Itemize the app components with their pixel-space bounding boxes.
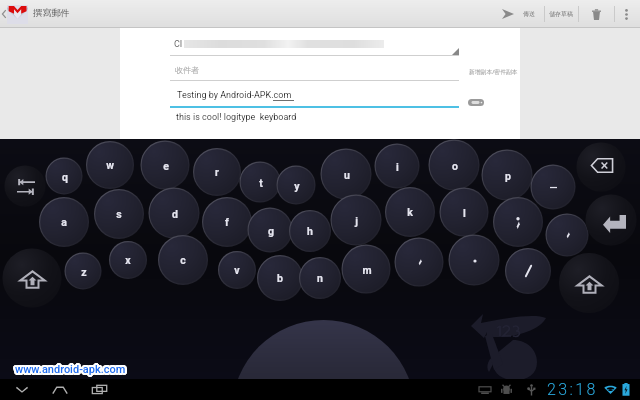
button[interactable]: p xyxy=(482,150,533,201)
staticText: 撰寫郵件 xyxy=(33,7,70,19)
button[interactable]: Recent apps xyxy=(88,382,112,397)
button[interactable]: x xyxy=(109,241,147,279)
staticText: h xyxy=(307,225,313,237)
staticText: l xyxy=(463,207,466,219)
button[interactable]: j xyxy=(331,195,382,246)
staticText: 儲存草稿 xyxy=(549,10,573,18)
button[interactable] xyxy=(505,248,551,294)
button[interactable]: Tab xyxy=(5,166,46,207)
staticText: w xyxy=(106,159,114,171)
staticText: CI xyxy=(174,39,183,50)
staticText: e xyxy=(163,160,169,172)
staticText: u xyxy=(344,169,350,181)
button[interactable] xyxy=(546,214,589,257)
button[interactable]: 新增副本/密件副本 xyxy=(466,64,515,80)
button[interactable]: u xyxy=(321,149,372,200)
button[interactable]: c xyxy=(158,235,208,285)
button[interactable]: y xyxy=(277,166,316,205)
button[interactable]: 撰寫郵件 xyxy=(7,0,70,28)
staticText: www.android-apk.com xyxy=(17,362,128,375)
staticText: 新增副本/密件副本 xyxy=(469,68,518,76)
button[interactable]: h xyxy=(289,210,331,252)
button[interactable]: Delete xyxy=(579,0,614,28)
button[interactable]: Home xyxy=(48,382,72,397)
button[interactable] xyxy=(493,197,543,247)
staticText: www.android-apk.com xyxy=(14,362,125,375)
staticText: d xyxy=(172,208,178,220)
staticText: www.android-apk.com xyxy=(14,363,125,376)
staticText: www.android-apk.com xyxy=(17,364,128,377)
button[interactable]: o xyxy=(429,140,480,191)
button[interactable]: Back xyxy=(10,382,34,397)
button[interactable]: w xyxy=(86,141,134,189)
staticText: r xyxy=(215,166,219,178)
button[interactable]: k xyxy=(385,187,435,237)
staticText: i xyxy=(396,161,399,173)
button[interactable]: Shift xyxy=(3,249,62,308)
staticText: www.android-apk.com xyxy=(16,363,127,376)
button[interactable] xyxy=(449,235,500,286)
staticText: x xyxy=(125,254,131,266)
staticText: this is cool! logitype keyboard xyxy=(176,112,297,123)
staticText: y xyxy=(294,180,300,192)
button[interactable]: l xyxy=(440,188,489,237)
button[interactable]: s xyxy=(94,189,144,239)
staticText: j xyxy=(355,215,358,227)
staticText: www.android-apk.com xyxy=(15,362,126,375)
button[interactable]: b xyxy=(257,255,303,301)
staticText: www.android-apk.com xyxy=(16,362,127,375)
staticText: o xyxy=(452,160,458,172)
staticText: c xyxy=(180,254,186,266)
staticText: g xyxy=(268,225,274,237)
button[interactable]: Back xyxy=(0,4,8,24)
staticText: www.android-apk.com xyxy=(13,364,124,377)
button[interactable]: this is cool! logitype keyboard xyxy=(170,109,460,137)
button[interactable]: v xyxy=(218,251,256,289)
staticText: www.android-apk.com xyxy=(17,363,128,376)
staticText: m xyxy=(362,264,372,276)
button[interactable]: Enter xyxy=(586,195,637,246)
button[interactable]: r xyxy=(193,148,241,196)
staticText: z xyxy=(81,266,87,278)
button[interactable]: z xyxy=(65,253,102,290)
staticText: f xyxy=(225,216,229,228)
button[interactable]: CI xyxy=(170,34,460,55)
button[interactable]: a xyxy=(39,197,89,247)
staticText: a xyxy=(61,216,67,228)
button[interactable]: 儲存草稿 xyxy=(545,0,578,28)
staticText: www.android-apk.com xyxy=(15,364,126,377)
button[interactable] xyxy=(531,165,576,210)
button[interactable]: Testing by Android-APK.com xyxy=(170,85,460,106)
staticText: www.android-apk.com xyxy=(15,363,126,376)
staticText: k xyxy=(407,206,413,218)
button[interactable]: i xyxy=(375,144,420,189)
button[interactable]: f xyxy=(202,197,252,247)
staticText: www.android-apk.com xyxy=(16,364,127,377)
button[interactable]: More options xyxy=(615,0,638,28)
button[interactable]: e xyxy=(141,141,190,190)
staticText: www.android-apk.com xyxy=(14,361,125,374)
button[interactable]: Shift xyxy=(559,253,619,313)
button[interactable]: m xyxy=(342,245,391,294)
staticText: www.android-apk.com xyxy=(13,362,124,375)
staticText: s xyxy=(116,208,122,220)
staticText: www.android-apk.com xyxy=(13,363,124,376)
staticText: Testing by Android-APK.com xyxy=(177,90,292,101)
button[interactable]: g xyxy=(248,208,293,253)
staticText: www.android-apk.com xyxy=(15,365,126,378)
button[interactable]: t xyxy=(240,162,281,203)
staticText: www.android-apk.com xyxy=(14,364,125,377)
button[interactable] xyxy=(395,238,444,287)
staticText: www.android-apk.com xyxy=(15,361,126,374)
staticText: 23:18 xyxy=(547,380,598,399)
button[interactable]: n xyxy=(299,257,341,299)
button[interactable]: d xyxy=(149,188,200,239)
button[interactable]: 收件者 xyxy=(170,60,460,80)
staticText: b xyxy=(277,272,283,284)
button[interactable]: Backspace xyxy=(577,143,626,192)
staticText: 收件者 xyxy=(175,65,199,75)
button[interactable]: q xyxy=(46,158,83,195)
staticText: 傳送 xyxy=(523,10,535,18)
button[interactable]: 傳送 xyxy=(498,0,544,28)
staticText: q xyxy=(62,171,68,183)
